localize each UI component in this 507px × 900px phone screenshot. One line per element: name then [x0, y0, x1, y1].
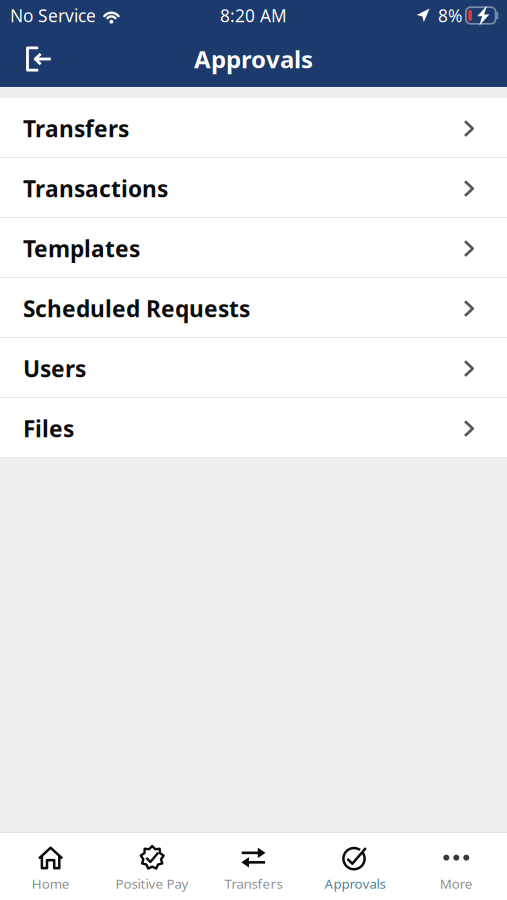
button[interactable]: Transfers [0, 98, 507, 158]
staticText: Templates [23, 233, 140, 263]
button[interactable]: Approvals [304, 832, 406, 900]
staticText: Files [23, 413, 74, 443]
button[interactable]: Users [0, 338, 507, 398]
button[interactable]: Home [0, 832, 101, 900]
staticText: Transactions [23, 173, 168, 203]
staticText: Home [32, 875, 70, 892]
staticText: 8:20 AM [220, 4, 287, 27]
button[interactable]: Files [0, 398, 507, 458]
staticText: Users [23, 353, 86, 383]
button[interactable]: More [406, 832, 507, 900]
staticText: More [440, 875, 473, 892]
staticText: Approvals [194, 43, 313, 75]
button[interactable]: Scheduled Requests [0, 278, 507, 338]
button[interactable]: Positive Pay [101, 832, 203, 900]
button[interactable]: Transfers [203, 832, 304, 900]
staticText: No Service [10, 4, 96, 27]
staticText: Transfers [23, 113, 129, 143]
button[interactable]: Templates [0, 218, 507, 278]
staticText: Scheduled Requests [23, 293, 250, 323]
staticText: 8% [438, 4, 462, 27]
staticText: Approvals [324, 875, 385, 892]
button[interactable]: Transactions [0, 158, 507, 218]
staticText: Positive Pay [116, 875, 189, 892]
button[interactable]: Sign out [0, 34, 70, 83]
staticText: Transfers [224, 875, 282, 892]
